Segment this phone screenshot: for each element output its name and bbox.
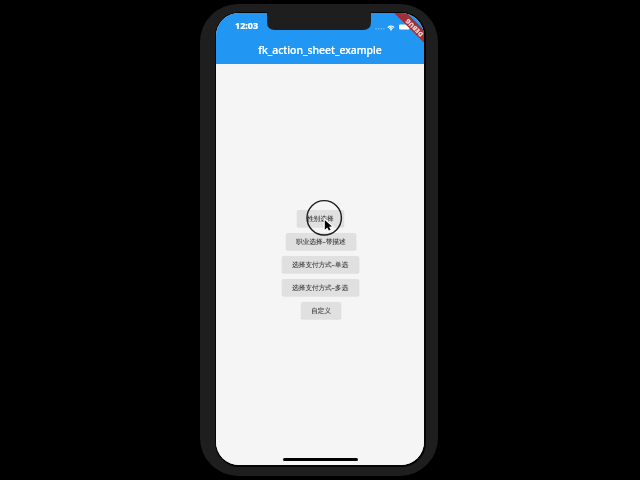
- button[interactable]: 职业选择–带描述: [286, 233, 356, 250]
- staticText: 自定义: [311, 307, 331, 315]
- staticText: DEBUG: [403, 16, 424, 38]
- button[interactable]: 选择支付方式–单选: [282, 256, 359, 273]
- button[interactable]: 性别选择: [297, 210, 344, 227]
- staticText: 职业选择–带描述: [296, 237, 346, 246]
- staticText: 选择支付方式–单选: [292, 260, 349, 269]
- staticText: 选择支付方式–多选: [292, 283, 349, 292]
- staticText: fk_action_sheet_example: [258, 43, 382, 57]
- staticText: 12:03: [235, 19, 259, 31]
- staticText: 性别选择: [307, 215, 334, 223]
- button[interactable]: 选择支付方式–多选: [282, 279, 359, 296]
- button[interactable]: 自定义: [301, 302, 341, 319]
